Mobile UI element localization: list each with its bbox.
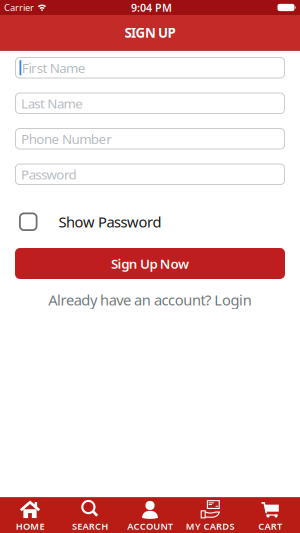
button[interactable]: First Name	[0, 57, 300, 78]
staticText: MY CARDS	[186, 520, 234, 532]
button[interactable]: HOME	[0, 496, 60, 533]
staticText: 9:04 PM	[131, 0, 172, 15]
staticText: Last Name	[21, 94, 83, 112]
staticText: Phone Number	[21, 130, 112, 148]
staticText: Show Password	[58, 212, 161, 231]
staticText: ACCOUNT	[127, 520, 173, 532]
button[interactable]: Show Password	[19, 212, 161, 231]
button[interactable]: CART	[240, 496, 300, 533]
button[interactable]: Phone Number	[0, 128, 300, 149]
staticText: First Name	[22, 59, 86, 77]
button[interactable]: Already have an account? Login	[48, 290, 252, 309]
staticText: SEARCH	[72, 520, 108, 532]
button[interactable]: Password	[0, 163, 300, 185]
staticText: SIGN UP	[124, 24, 175, 41]
staticText: Carrier	[4, 1, 34, 14]
staticText: Already have an account? Login	[48, 290, 252, 309]
button[interactable]: SEARCH	[60, 496, 120, 533]
staticText: Sign Up Now	[111, 255, 189, 272]
staticText: HOME	[16, 520, 44, 532]
button[interactable]: Last Name	[0, 92, 300, 114]
button[interactable]: MY CARDS	[180, 496, 240, 533]
button[interactable]: Sign Up Now	[0, 248, 300, 279]
staticText: CART	[258, 520, 282, 532]
staticText: Password	[21, 165, 77, 183]
button[interactable]: ACCOUNT	[120, 496, 180, 533]
